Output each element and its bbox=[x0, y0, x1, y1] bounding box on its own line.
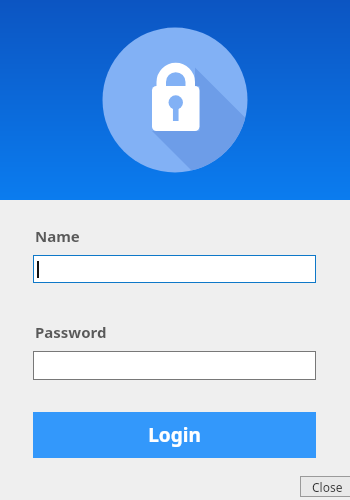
button[interactable]: Password input bbox=[33, 351, 316, 380]
button[interactable]: Name input bbox=[33, 255, 316, 283]
button[interactable]: Close bbox=[300, 476, 350, 497]
staticText: Login bbox=[148, 422, 201, 448]
staticText: Name bbox=[35, 226, 80, 246]
button[interactable]: Login bbox=[33, 412, 316, 458]
staticText: Close bbox=[312, 479, 343, 495]
staticText: Password bbox=[35, 322, 107, 342]
